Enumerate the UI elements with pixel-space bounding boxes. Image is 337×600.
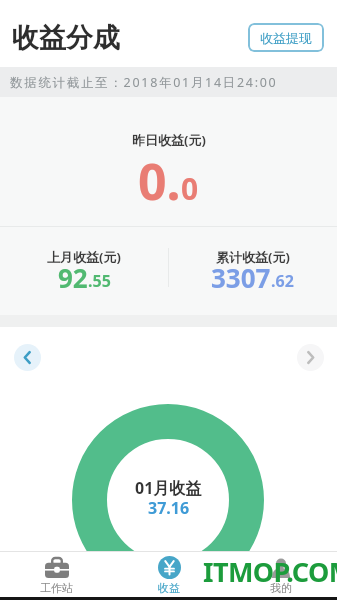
staticText: 数据统计截止至：2018年01月14日24:00 [10,74,278,91]
button[interactable]: 收益提现 [248,23,324,52]
button[interactable]: 我的 [225,551,337,597]
staticText: .62 [271,270,294,292]
staticText: 37.16 [148,497,190,519]
button[interactable]: 上月收益(元) [0,227,168,315]
staticText: ITMOP.COM [203,553,337,590]
staticText: 工作站 [40,581,73,595]
staticText: 01月收益 [135,477,202,499]
staticText: .55 [88,270,111,292]
staticText: 收益分成 [12,21,120,55]
staticText: 收益 [158,581,180,595]
button[interactable] [297,344,324,371]
staticText: 0. [138,147,181,201]
staticText: 累计收益(元) [216,248,290,266]
button[interactable]: 收益 [113,551,225,597]
staticText: 0 [181,168,199,209]
staticText: 收益提现 [260,30,312,46]
staticText: 上月收益(元) [47,248,121,266]
staticText: 92 [58,260,88,295]
staticText: 我的 [270,581,292,595]
button[interactable]: 累计收益(元) [168,227,337,315]
button[interactable] [14,344,41,371]
staticText: 3307 [211,260,271,295]
button[interactable]: 工作站 [0,551,113,597]
staticText: 昨日收益(元) [132,131,206,149]
